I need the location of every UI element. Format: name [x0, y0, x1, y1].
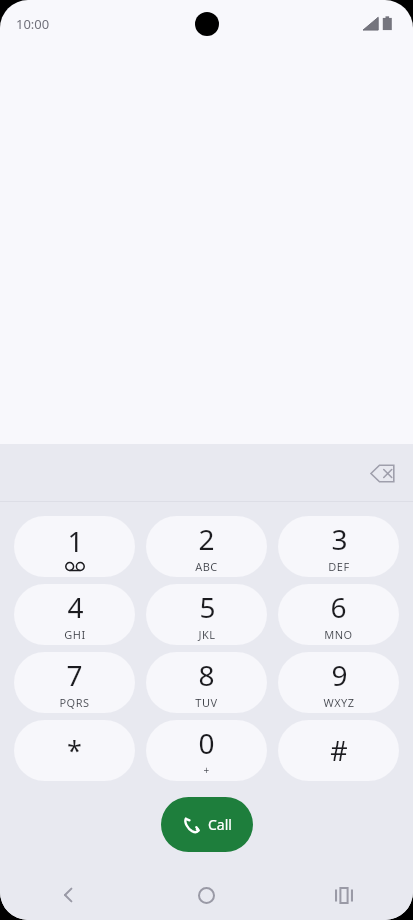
button[interactable]: 3: [278, 516, 399, 577]
button[interactable]: 4: [14, 584, 135, 645]
staticText: DEF: [328, 559, 350, 574]
button[interactable]: 6: [278, 584, 399, 645]
staticText: 8: [198, 656, 215, 694]
button[interactable]: 8: [146, 652, 267, 713]
staticText: 10:00: [16, 15, 50, 33]
staticText: ABC: [195, 559, 218, 574]
button[interactable]: Backspace: [360, 451, 404, 495]
staticText: +: [203, 763, 210, 777]
staticText: 6: [330, 588, 347, 626]
staticText: Call: [208, 815, 232, 834]
button[interactable]: 5: [146, 584, 267, 645]
staticText: 4: [67, 588, 84, 626]
staticText: 7: [66, 656, 83, 694]
button[interactable]: 7: [14, 652, 135, 713]
staticText: 0: [198, 724, 215, 762]
button[interactable]: #: [278, 720, 399, 781]
staticText: #: [330, 732, 348, 769]
staticText: 2: [198, 520, 215, 558]
staticText: 3: [331, 520, 348, 558]
staticText: GHI: [64, 627, 86, 642]
button[interactable]: Call: [161, 797, 253, 852]
staticText: 5: [199, 588, 216, 626]
button[interactable]: 2: [146, 516, 267, 577]
button[interactable]: 0: [146, 720, 267, 781]
button[interactable]: Home: [137, 870, 275, 920]
staticText: 9: [331, 656, 348, 694]
button[interactable]: 1: [14, 516, 135, 577]
button[interactable]: 9: [278, 652, 399, 713]
staticText: MNO: [324, 627, 353, 642]
button[interactable]: Back: [0, 870, 137, 920]
staticText: WXYZ: [323, 695, 355, 710]
staticText: PQRS: [59, 695, 90, 710]
staticText: *: [67, 732, 82, 769]
staticText: JKL: [198, 627, 216, 642]
button[interactable]: Recent apps: [275, 870, 413, 920]
staticText: TUV: [195, 695, 218, 710]
button[interactable]: *: [14, 720, 135, 781]
staticText: 1: [67, 522, 84, 560]
